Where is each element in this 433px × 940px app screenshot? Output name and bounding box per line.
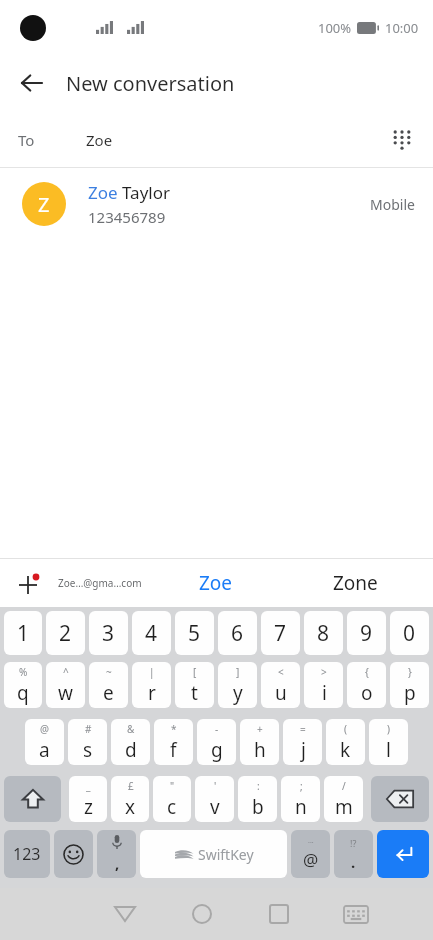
staticText: } bbox=[408, 665, 412, 679]
button[interactable]: ~ bbox=[89, 662, 128, 708]
staticText: ' bbox=[214, 779, 217, 793]
staticText: f bbox=[170, 737, 177, 763]
staticText: 123 bbox=[13, 843, 41, 865]
button[interactable]: 6 bbox=[218, 611, 257, 655]
button[interactable]: _ bbox=[69, 776, 107, 822]
staticText: !? bbox=[350, 837, 357, 849]
button[interactable]: ) bbox=[369, 719, 408, 765]
staticText: = bbox=[300, 722, 306, 736]
button[interactable]: % bbox=[4, 662, 42, 708]
staticText: " bbox=[170, 779, 175, 793]
staticText: i bbox=[322, 680, 327, 706]
button[interactable]: Hide keyboard bbox=[86, 888, 163, 940]
button[interactable]: Space bbox=[140, 830, 287, 878]
button[interactable]: 9 bbox=[347, 611, 386, 655]
button[interactable]: Period bbox=[334, 830, 373, 878]
staticText: 123456789 bbox=[88, 207, 166, 227]
button[interactable]: } bbox=[390, 662, 429, 708]
button[interactable]: Voice input and comma bbox=[97, 830, 136, 878]
staticText: x bbox=[125, 794, 136, 820]
staticText: < bbox=[278, 665, 284, 679]
button[interactable]: | bbox=[132, 662, 171, 708]
staticText: £ bbox=[128, 779, 134, 793]
button[interactable]: [ bbox=[175, 662, 214, 708]
button[interactable]: ' bbox=[195, 776, 234, 822]
staticText: @ bbox=[303, 848, 319, 871]
staticText: a bbox=[39, 737, 50, 763]
staticText: @ bbox=[40, 722, 49, 736]
staticText: > bbox=[321, 665, 327, 679]
button[interactable]: Emoji bbox=[54, 830, 93, 878]
staticText: t bbox=[191, 680, 198, 706]
button[interactable]: 8 bbox=[304, 611, 343, 655]
staticText: l bbox=[386, 737, 391, 763]
button[interactable]: ] bbox=[218, 662, 257, 708]
button[interactable]: 5 bbox=[175, 611, 214, 655]
staticText: , bbox=[115, 853, 120, 873]
staticText: ^ bbox=[63, 665, 69, 679]
button[interactable]: * bbox=[154, 719, 193, 765]
button[interactable]: / bbox=[324, 776, 363, 822]
button[interactable]: ( bbox=[326, 719, 365, 765]
staticText: ( bbox=[344, 722, 347, 736]
staticText: k bbox=[340, 737, 351, 763]
button[interactable]: ; bbox=[281, 776, 320, 822]
button[interactable]: 7 bbox=[261, 611, 300, 655]
button[interactable]: # bbox=[68, 719, 107, 765]
button[interactable]: { bbox=[347, 662, 386, 708]
button[interactable]: & bbox=[111, 719, 150, 765]
staticText: / bbox=[342, 779, 346, 793]
button[interactable]: 0 bbox=[390, 611, 429, 655]
button[interactable]: > bbox=[304, 662, 343, 708]
button[interactable]: Home bbox=[163, 888, 240, 940]
button[interactable]: @ bbox=[25, 719, 64, 765]
button[interactable]: Backspace bbox=[371, 776, 429, 822]
staticText: ) bbox=[387, 722, 390, 736]
button[interactable]: Back bbox=[8, 59, 56, 107]
button[interactable]: Switch keyboard bbox=[317, 888, 394, 940]
staticText: 9 bbox=[360, 619, 373, 648]
button[interactable]: 4 bbox=[132, 611, 171, 655]
staticText: [ bbox=[193, 665, 197, 679]
staticText: 1 bbox=[17, 619, 30, 648]
staticText: m bbox=[335, 794, 353, 820]
staticText: 7 bbox=[274, 619, 287, 648]
button[interactable]: More suggestions bbox=[8, 563, 48, 603]
button[interactable]: Enter bbox=[377, 830, 429, 878]
button[interactable]: Dialpad bbox=[379, 117, 425, 163]
staticText: _ bbox=[86, 779, 91, 793]
button[interactable]: = bbox=[283, 719, 322, 765]
button[interactable]: - bbox=[197, 719, 236, 765]
staticText: + bbox=[257, 722, 263, 736]
staticText: 5 bbox=[188, 619, 201, 648]
staticText: q bbox=[17, 680, 29, 706]
staticText: * bbox=[171, 722, 177, 736]
button[interactable]: : bbox=[238, 776, 277, 822]
staticText: o bbox=[361, 680, 373, 706]
button[interactable]: " bbox=[153, 776, 191, 822]
button[interactable]: £ bbox=[111, 776, 149, 822]
button[interactable]: ^ bbox=[46, 662, 85, 708]
staticText: g bbox=[211, 737, 223, 763]
staticText: ··· bbox=[308, 838, 314, 848]
button[interactable]: + bbox=[240, 719, 279, 765]
staticText: | bbox=[149, 665, 155, 679]
staticText: Z bbox=[38, 191, 50, 218]
staticText: 100% bbox=[318, 19, 352, 37]
staticText: 3 bbox=[102, 619, 115, 648]
button[interactable]: At sign bbox=[291, 830, 330, 878]
staticText: Zoe…@gma…com bbox=[58, 576, 142, 590]
staticText: b bbox=[252, 794, 264, 820]
staticText: ; bbox=[300, 779, 303, 793]
button[interactable]: Recents bbox=[240, 888, 317, 940]
button[interactable]: Z bbox=[0, 168, 433, 240]
button[interactable]: 1 bbox=[4, 611, 42, 655]
staticText: Zoe Taylor bbox=[88, 181, 171, 204]
staticText: v bbox=[210, 794, 220, 820]
button[interactable]: 3 bbox=[89, 611, 128, 655]
button[interactable]: Shift bbox=[4, 776, 61, 822]
button[interactable]: 123 bbox=[4, 830, 50, 878]
button[interactable]: < bbox=[261, 662, 300, 708]
staticText: & bbox=[127, 722, 135, 736]
button[interactable]: 2 bbox=[46, 611, 85, 655]
